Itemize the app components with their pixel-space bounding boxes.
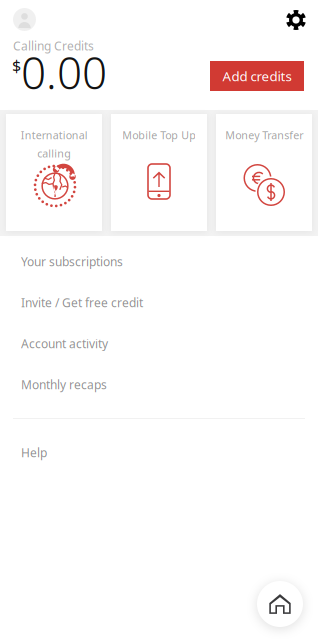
button[interactable]: Settings — [286, 10, 306, 30]
staticText: Add credits — [222, 67, 291, 85]
button[interactable]: Monthly recaps — [0, 364, 318, 405]
button[interactable]: Invite / Get free credit — [0, 282, 318, 323]
button[interactable]: Add credits — [210, 61, 304, 91]
staticText: International calling — [20, 128, 87, 160]
staticText: Money Transfer — [225, 128, 303, 142]
button[interactable]: Profile — [13, 8, 36, 31]
button[interactable]: Account activity — [0, 323, 318, 364]
staticText: Monthly recaps — [21, 376, 107, 392]
staticText: Your subscriptions — [21, 253, 123, 269]
button[interactable]: Home — [252, 576, 308, 632]
staticText: Invite / Get free credit — [21, 294, 143, 310]
staticText: $ — [12, 55, 21, 76]
button[interactable]: Mobile Top Up — [111, 114, 207, 231]
staticText: 0.00 — [21, 43, 107, 101]
staticText: Help — [21, 444, 47, 460]
staticText: Calling Credits — [13, 38, 94, 54]
button[interactable]: Your subscriptions — [0, 241, 318, 282]
staticText: Account activity — [21, 335, 108, 351]
button[interactable]: International calling — [6, 114, 102, 231]
button[interactable]: Help — [0, 432, 318, 473]
staticText: Mobile Top Up — [122, 128, 196, 142]
button[interactable]: Money Transfer — [216, 114, 312, 231]
